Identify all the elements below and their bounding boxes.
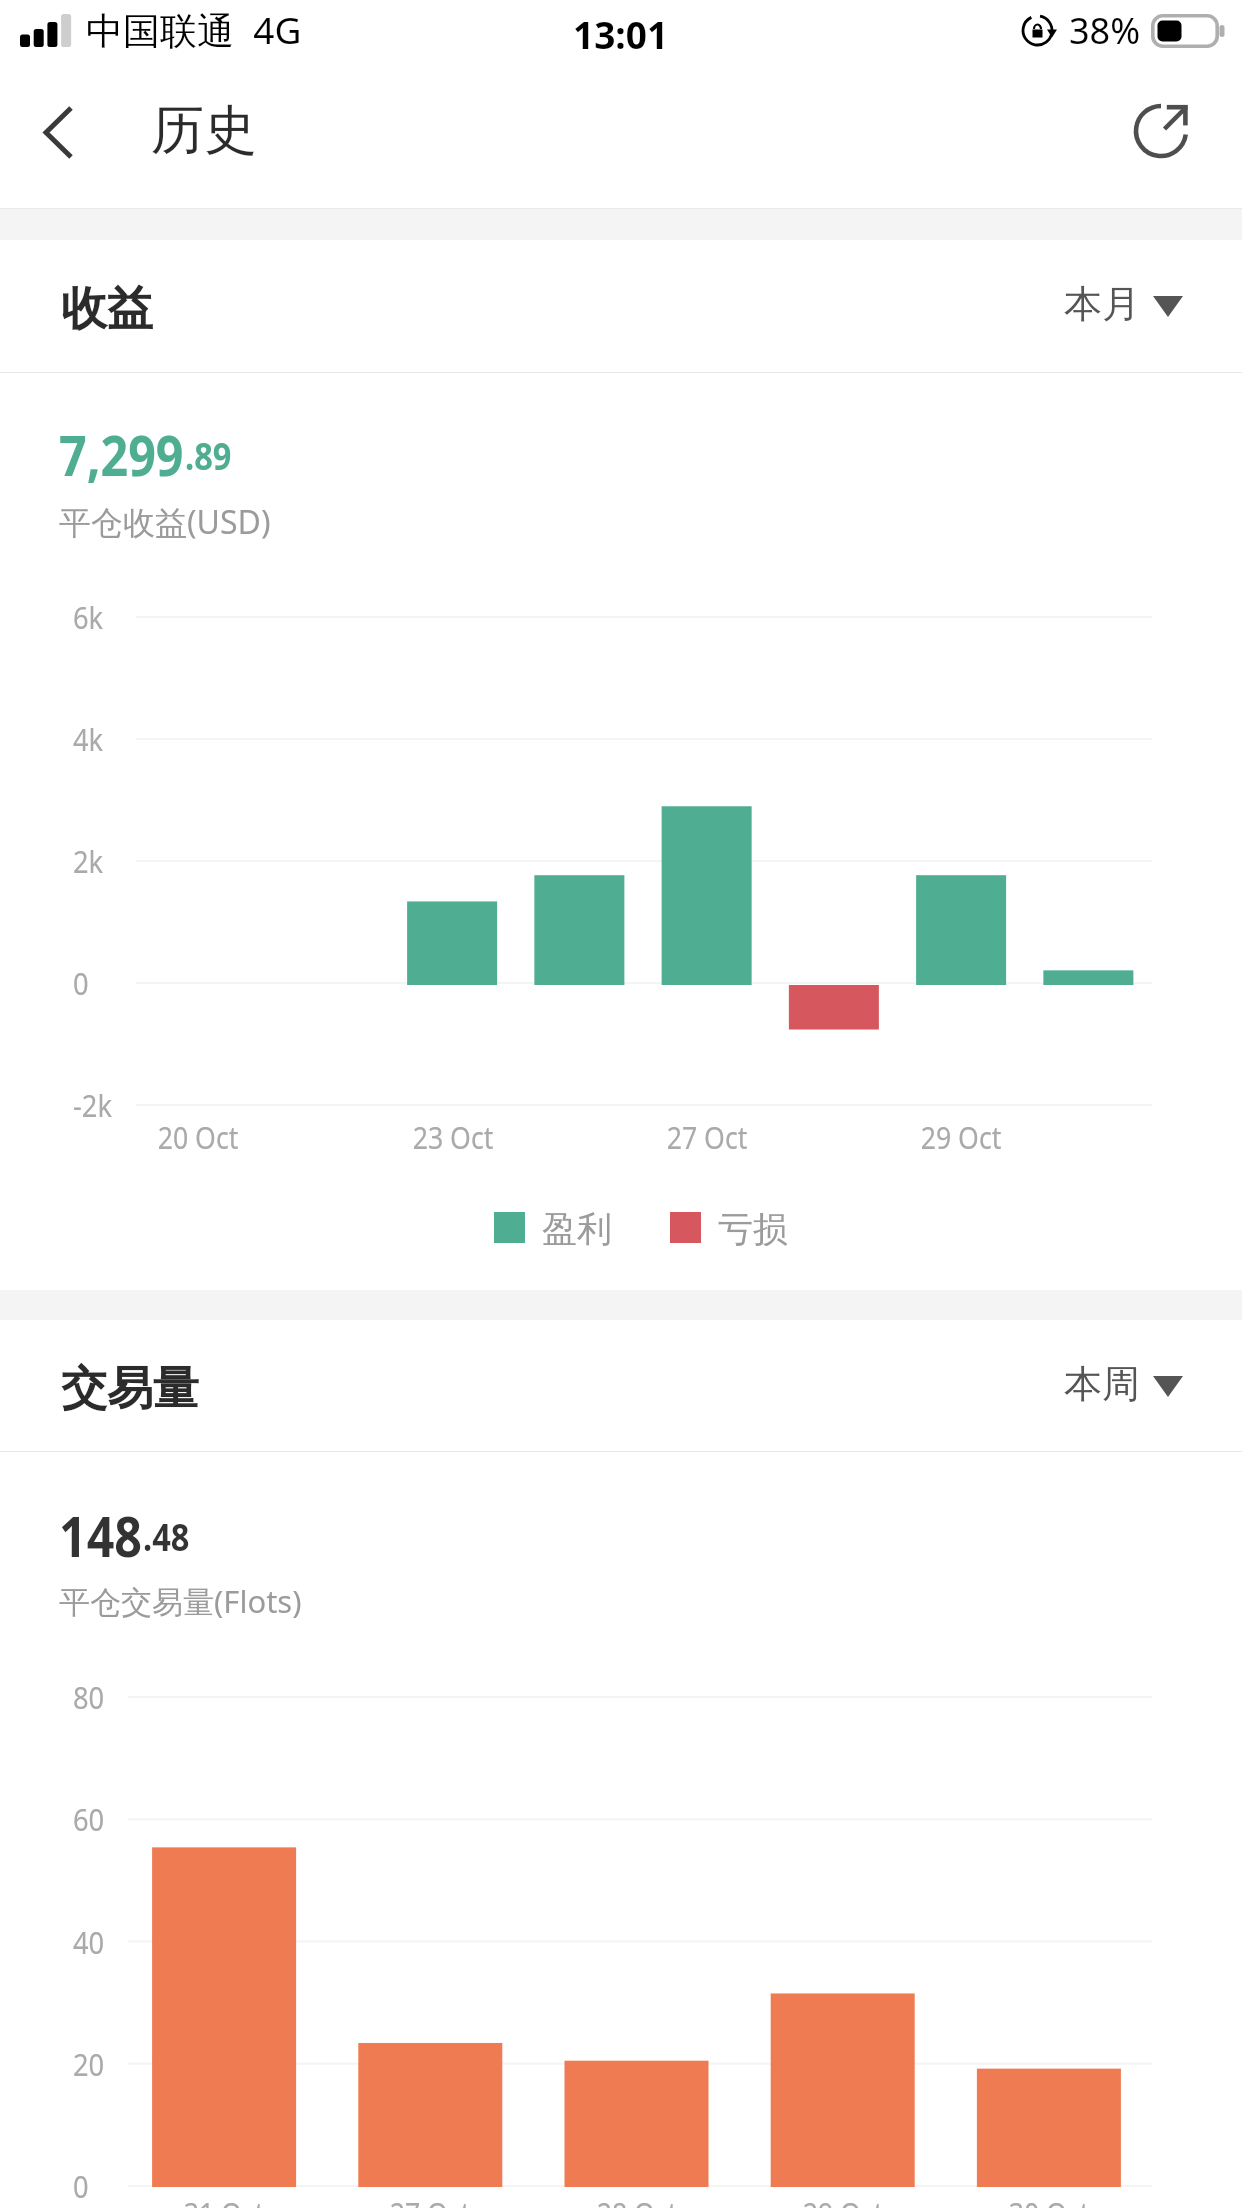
- staticText: 40: [73, 1921, 179, 1963]
- staticText: 0: [73, 2165, 179, 2207]
- staticText: 30 Oct: [972, 2192, 1126, 2208]
- staticText: 60: [73, 1798, 179, 1840]
- staticText: 80: [73, 1676, 179, 1718]
- staticText: 本月: [1064, 280, 1140, 328]
- staticText: 6k: [73, 596, 179, 638]
- staticText: 2k: [73, 840, 179, 882]
- button[interactable]: Back: [0, 70, 118, 208]
- staticText: 23 Oct: [376, 1116, 530, 1158]
- staticText: 亏损: [718, 1207, 788, 1251]
- staticText: -2k: [73, 1084, 179, 1126]
- staticText: 本周: [1064, 1360, 1140, 1408]
- staticText: 平仓交易量(Flots): [59, 1580, 302, 1622]
- staticText: 13:01: [573, 9, 669, 59]
- staticText: 平仓收益(USD): [59, 500, 271, 544]
- staticText: 20: [73, 2043, 179, 2085]
- staticText: 20 Oct: [121, 1116, 275, 1158]
- staticText: 38%: [1069, 6, 1141, 55]
- staticText: 31 Oct: [147, 2192, 301, 2208]
- button[interactable]: 本周: [1064, 1362, 1183, 1410]
- staticText: 28 Oct: [560, 2192, 714, 2208]
- staticText: 历史: [151, 97, 257, 164]
- staticText: 盈利: [542, 1207, 612, 1251]
- staticText: 29 Oct: [766, 2192, 920, 2208]
- staticText: .48: [143, 1511, 190, 1561]
- staticText: 27 Oct: [353, 2192, 507, 2208]
- staticText: .89: [185, 430, 232, 480]
- staticText: 148: [59, 1498, 143, 1573]
- staticText: 交易量: [61, 1360, 199, 1418]
- staticText: 收益: [61, 280, 153, 338]
- staticText: 4k: [73, 718, 179, 760]
- staticText: 27 Oct: [630, 1116, 784, 1158]
- staticText: 0: [73, 962, 179, 1004]
- staticText: 中国联通 4G: [86, 4, 302, 55]
- button[interactable]: Share: [1112, 70, 1242, 208]
- staticText: 7,299: [59, 417, 184, 492]
- button[interactable]: 本月: [1064, 282, 1183, 330]
- staticText: 29 Oct: [884, 1116, 1038, 1158]
